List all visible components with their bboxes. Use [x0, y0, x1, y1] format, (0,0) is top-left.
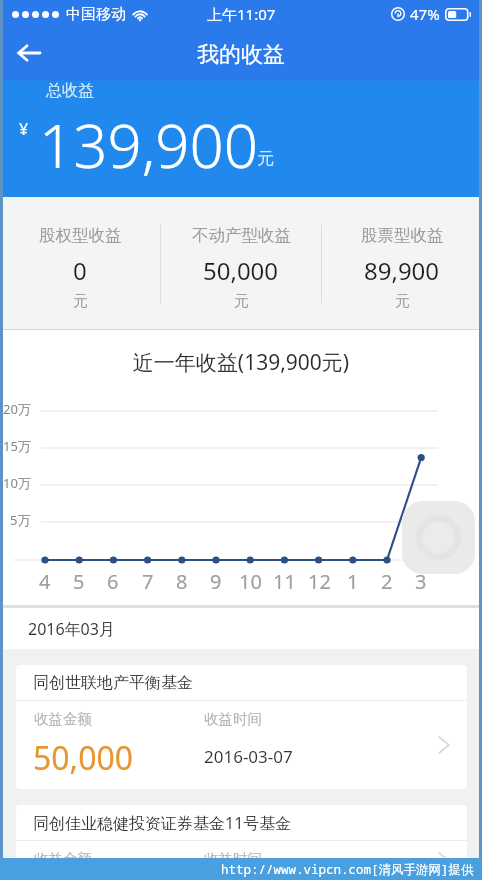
staticText: 2016年03月 [28, 618, 115, 640]
button[interactable]: Assistive touch [402, 501, 475, 574]
staticText: 收益金额 [34, 710, 92, 728]
staticText: 上午11:07 [207, 4, 276, 24]
staticText: 10 [239, 568, 262, 595]
staticText: 收益金额 [34, 850, 92, 868]
staticText: 近一年收益(139,900元) [0, 348, 482, 377]
staticText: 9 [210, 568, 222, 595]
staticText: 139,900 [39, 104, 259, 186]
staticText: ¥ [19, 118, 29, 140]
button[interactable]: Back [4, 28, 54, 78]
staticText: 10万 [3, 474, 31, 492]
staticText: 元 [257, 148, 274, 169]
staticText: 5 [73, 568, 85, 595]
staticText: http://www.vipcn.com[清风手游网]提供 [221, 861, 474, 878]
staticText: 收益时间 [204, 850, 262, 868]
button[interactable]: 同创世联地产平衡基金 [16, 665, 467, 789]
staticText: 同创世联地产平衡基金 [33, 673, 193, 693]
staticText: 同创佳业稳健投资证券基金11号基金 [33, 812, 292, 834]
staticText: 0 [73, 254, 87, 287]
staticText: 8 [176, 568, 188, 595]
staticText: 12 [308, 568, 331, 595]
staticText: 7 [142, 568, 154, 595]
button[interactable]: 不动产型收益 [161, 197, 321, 330]
staticText: 中国移动 [66, 5, 126, 24]
staticText: 2 [381, 568, 393, 595]
button[interactable]: 股票型收益 [322, 197, 482, 330]
staticText: 元 [73, 292, 88, 311]
button[interactable]: 股权型收益 [0, 197, 160, 330]
staticText: 我的收益 [197, 41, 285, 69]
staticText: 1 [347, 568, 359, 595]
staticText: 4 [39, 568, 51, 595]
staticText: 89,900 [364, 254, 440, 287]
staticText: 5万 [10, 511, 31, 529]
staticText: 47% [410, 4, 440, 24]
staticText: 元 [395, 292, 410, 311]
staticText: 50,000 [203, 254, 279, 287]
staticText: 6 [107, 568, 119, 595]
staticText: 股权型收益 [39, 225, 122, 246]
staticText: 收益时间 [204, 710, 262, 728]
staticText: 15万 [3, 437, 31, 455]
staticText: 2016-03-07 [204, 745, 293, 768]
staticText: 不动产型收益 [192, 225, 291, 246]
staticText: 3 [415, 568, 427, 595]
staticText: 11 [273, 568, 296, 595]
staticText: 总收益 [46, 81, 94, 101]
button[interactable]: 同创佳业稳健投资证券基金11号基金 [16, 805, 467, 880]
staticText: 50,000 [33, 736, 134, 780]
staticText: 股票型收益 [361, 225, 444, 246]
staticText: 元 [234, 292, 249, 311]
staticText: 20万 [3, 400, 31, 418]
